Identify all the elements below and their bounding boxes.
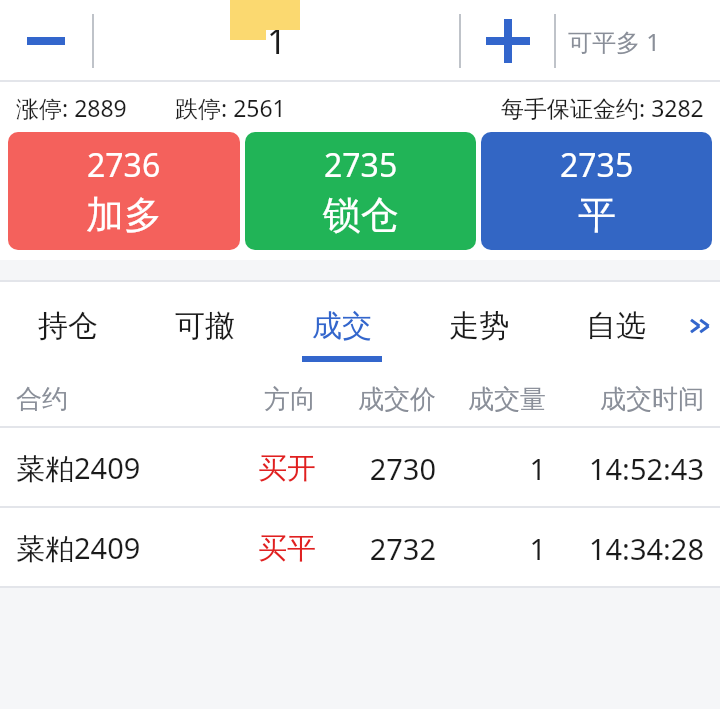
staticText: 买平 — [206, 530, 316, 567]
button[interactable]: Increase — [461, 0, 554, 82]
staticText: 加多 — [86, 191, 162, 239]
staticText: 成交价 — [316, 383, 436, 416]
button[interactable]: Decrease — [0, 0, 92, 82]
button[interactable]: 走势 — [410, 282, 547, 370]
staticText: 菜粕2409 — [16, 448, 206, 488]
staticText: 1 — [436, 529, 546, 568]
staticText: 自选 — [586, 307, 646, 345]
button[interactable]: 2735 — [481, 132, 712, 250]
button[interactable]: More tabs — [684, 282, 720, 370]
staticText: 1 — [436, 449, 546, 488]
staticText: 每手保证金约: 3282 — [501, 92, 704, 123]
button[interactable]: 2735 — [245, 132, 476, 250]
staticText: 平 — [578, 191, 616, 239]
button[interactable]: 1 — [94, 0, 459, 82]
button[interactable]: 可撤 — [136, 282, 273, 370]
button[interactable]: 持仓 — [0, 282, 136, 370]
staticText: 可撤 — [175, 307, 235, 345]
staticText: 跌停: 2561 — [175, 92, 286, 123]
staticText: 成交时间 — [546, 383, 704, 416]
staticText: 方向 — [206, 383, 316, 416]
staticText: 成交 — [312, 307, 372, 345]
staticText: 涨停: 2889 — [16, 92, 127, 123]
staticText: 成交量 — [436, 383, 546, 416]
staticText: 合约 — [16, 383, 206, 416]
button[interactable]: 菜粕2409 — [0, 508, 720, 588]
staticText: 2732 — [316, 529, 436, 568]
staticText: 锁仓 — [323, 191, 399, 239]
staticText: 持仓 — [38, 307, 98, 345]
staticText: 菜粕2409 — [16, 528, 206, 568]
staticText: 走势 — [449, 307, 509, 345]
staticText: 1 — [267, 18, 287, 64]
staticText: 2735 — [560, 143, 634, 187]
staticText: 14:34:28 — [546, 529, 704, 568]
button[interactable]: 菜粕2409 — [0, 428, 720, 508]
button[interactable]: 自选 — [547, 282, 684, 370]
staticText: 2736 — [87, 143, 161, 187]
staticText: 买开 — [206, 450, 316, 487]
staticText: 2735 — [324, 143, 398, 187]
staticText: 14:52:43 — [546, 449, 704, 488]
button[interactable]: 可平多 1 — [556, 0, 720, 82]
button[interactable]: 成交 — [273, 282, 410, 370]
staticText: 可平多 1 — [568, 25, 660, 58]
staticText: 2730 — [316, 449, 436, 488]
button[interactable]: 2736 — [8, 132, 240, 250]
